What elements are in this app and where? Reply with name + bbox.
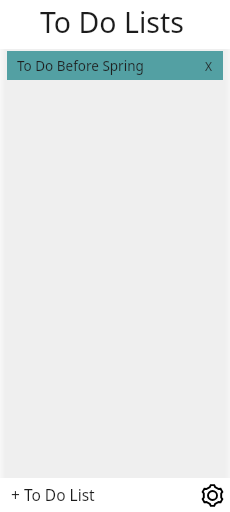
staticText: + To Do List	[11, 484, 95, 505]
button[interactable]: Settings	[199, 482, 225, 508]
staticText: To Do Before Spring	[17, 57, 144, 75]
button[interactable]: To Do Before Spring	[7, 51, 223, 80]
button[interactable]: Delete list	[205, 58, 213, 74]
staticText: X	[205, 58, 213, 74]
button[interactable]: + To Do List	[0, 481, 103, 510]
staticText: To Do Lists	[40, 3, 184, 42]
